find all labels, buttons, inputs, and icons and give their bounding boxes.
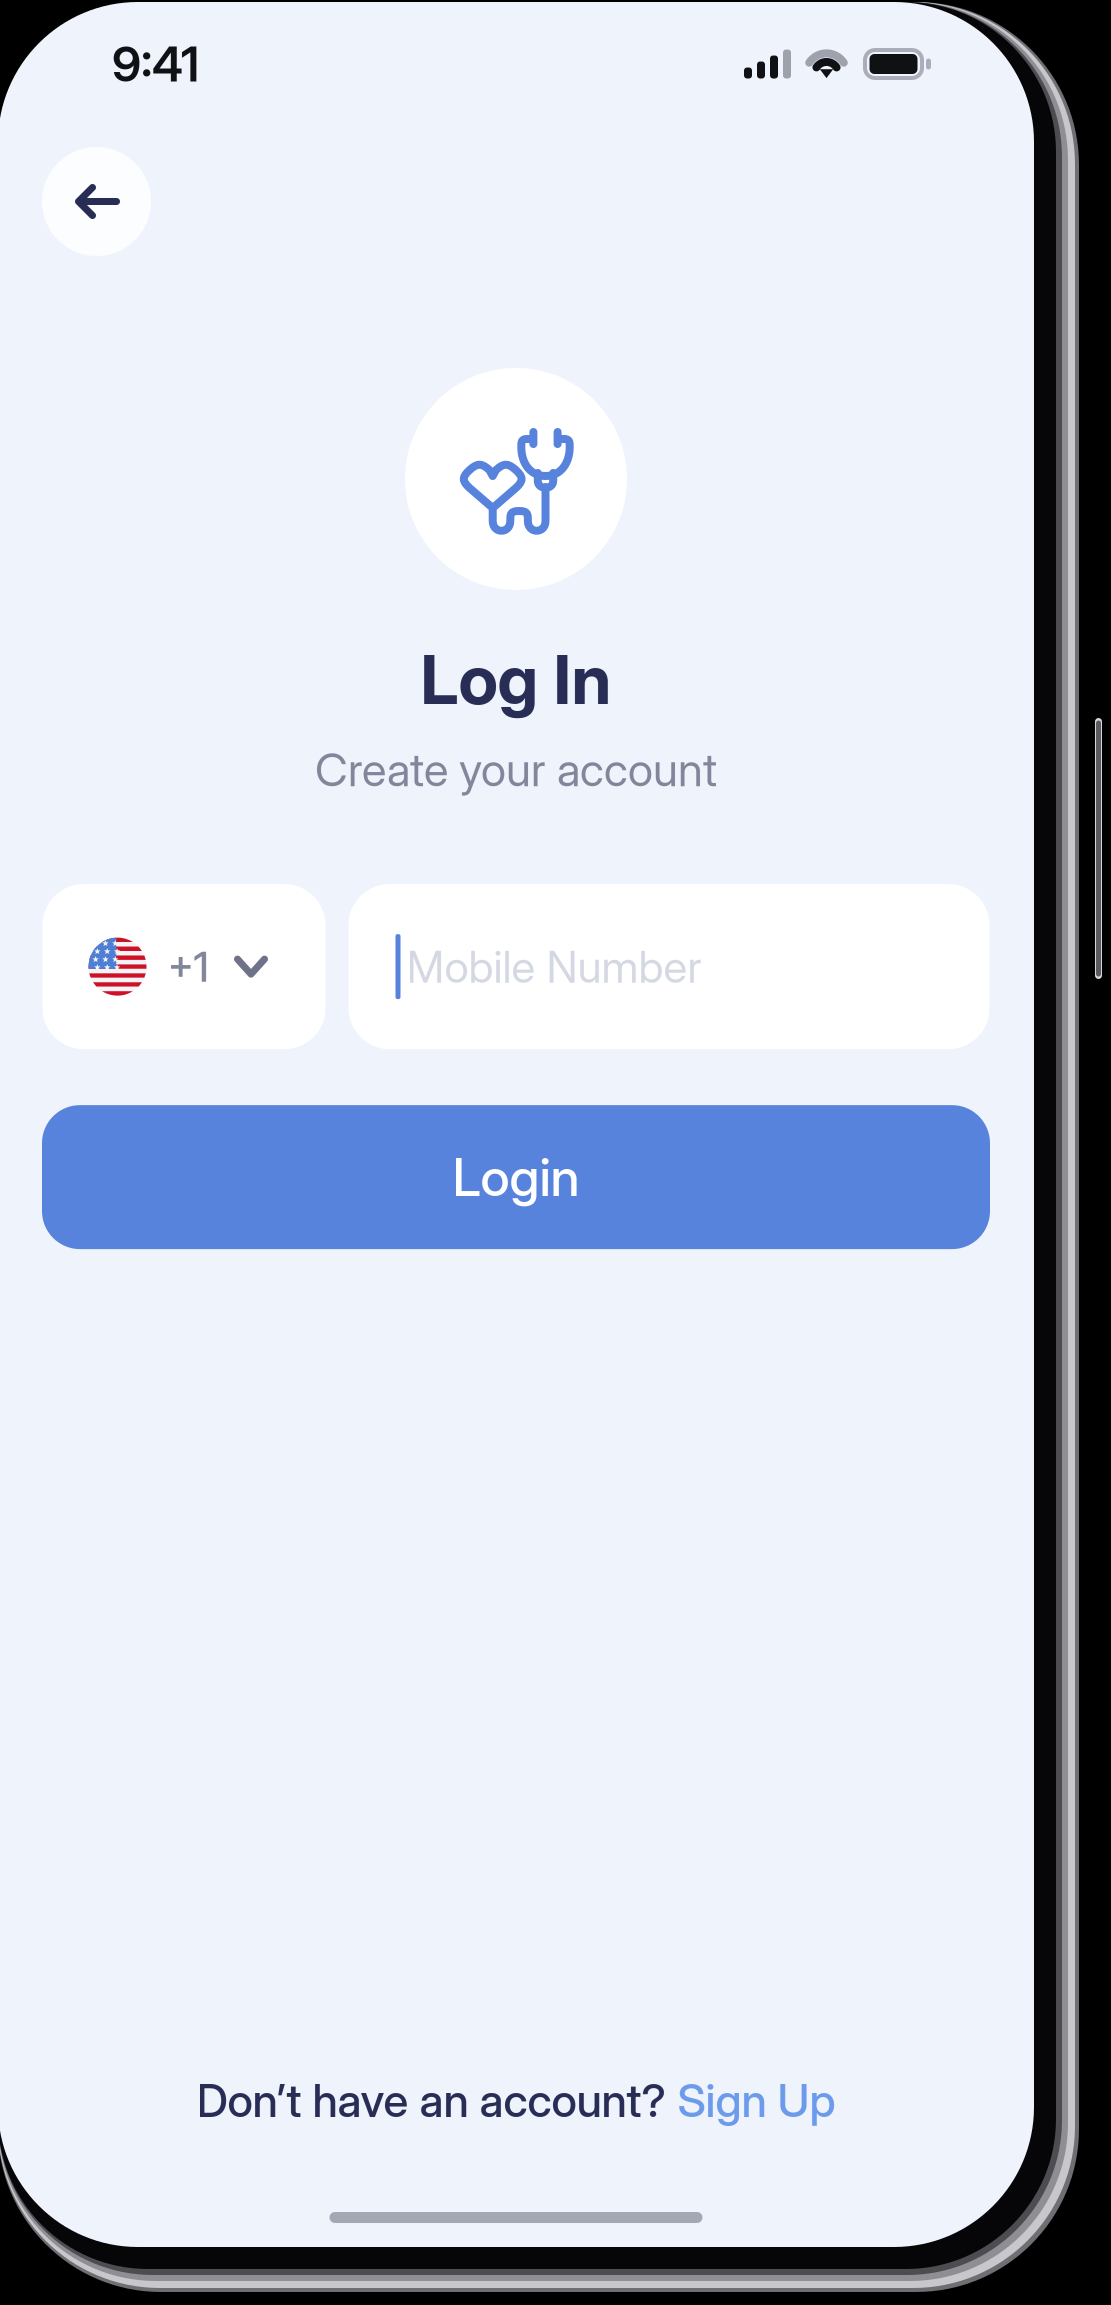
staticText: Sign Up — [677, 2073, 835, 2128]
staticText: Log In — [420, 638, 611, 720]
staticText: 9:41 — [112, 35, 199, 93]
staticText: Mobile Number — [406, 940, 701, 993]
button[interactable]: +1 — [42, 884, 325, 1049]
staticText: Create your account — [315, 742, 717, 797]
staticText: Don’t have an account? — [196, 2073, 665, 2128]
staticText: +1 — [167, 942, 208, 992]
button[interactable]: Back — [42, 147, 151, 256]
button[interactable]: Login — [42, 1105, 990, 1249]
button[interactable]: Sign Up — [665, 2073, 835, 2128]
button[interactable]: Mobile Number — [348, 884, 989, 1049]
staticText: Login — [452, 1146, 579, 1209]
